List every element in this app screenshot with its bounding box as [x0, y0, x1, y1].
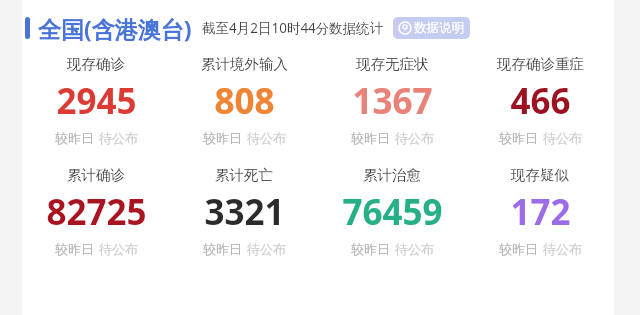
staticText: 全国(含港澳台) — [38, 13, 192, 44]
staticText: 82725 — [46, 188, 147, 236]
staticText: 2945 — [56, 77, 137, 125]
staticText: 累计死亡 — [215, 166, 273, 184]
staticText: 累计境外输入 — [201, 55, 288, 73]
button[interactable]: 累计治愈 — [318, 165, 466, 258]
staticText: 待公布 — [543, 241, 582, 257]
staticText: 较昨日 — [499, 241, 538, 257]
staticText: 较昨日 — [351, 241, 390, 257]
staticText: 466 — [510, 77, 571, 125]
staticText: 较昨日 — [203, 130, 242, 146]
button[interactable]: 累计死亡 — [170, 165, 318, 258]
staticText: 808 — [214, 77, 275, 125]
button[interactable]: 数据说明 — [393, 17, 470, 39]
button[interactable]: 累计境外输入 — [170, 54, 318, 147]
staticText: 待公布 — [99, 130, 138, 146]
staticText: 1367 — [352, 77, 433, 125]
staticText: 待公布 — [99, 241, 138, 257]
staticText: 现存疑似 — [511, 166, 569, 184]
staticText: 待公布 — [247, 130, 286, 146]
button[interactable]: 累计确诊 — [22, 165, 170, 258]
staticText: 172 — [510, 188, 571, 236]
staticText: 较昨日 — [499, 130, 538, 146]
staticText: 待公布 — [395, 130, 434, 146]
staticText: 现存确诊 — [67, 55, 125, 73]
staticText: 较昨日 — [55, 130, 94, 146]
button[interactable]: 现存无症状 — [318, 54, 466, 147]
staticText: 数据说明 — [414, 20, 464, 36]
staticText: 现存确诊重症 — [497, 55, 584, 73]
staticText: 截至4月2日10时44分数据统计 — [202, 19, 384, 37]
staticText: 待公布 — [543, 130, 582, 146]
staticText: 现存无症状 — [356, 55, 429, 73]
staticText: 较昨日 — [351, 130, 390, 146]
staticText: 较昨日 — [203, 241, 242, 257]
button[interactable]: 现存确诊重症 — [466, 54, 614, 147]
staticText: 待公布 — [247, 241, 286, 257]
staticText: 累计治愈 — [363, 166, 421, 184]
staticText: 76459 — [342, 188, 443, 236]
staticText: 较昨日 — [55, 241, 94, 257]
button[interactable]: 现存疑似 — [466, 165, 614, 258]
staticText: 累计确诊 — [67, 166, 125, 184]
staticText: 3321 — [204, 188, 285, 236]
staticText: 待公布 — [395, 241, 434, 257]
button[interactable]: 现存确诊 — [22, 54, 170, 147]
